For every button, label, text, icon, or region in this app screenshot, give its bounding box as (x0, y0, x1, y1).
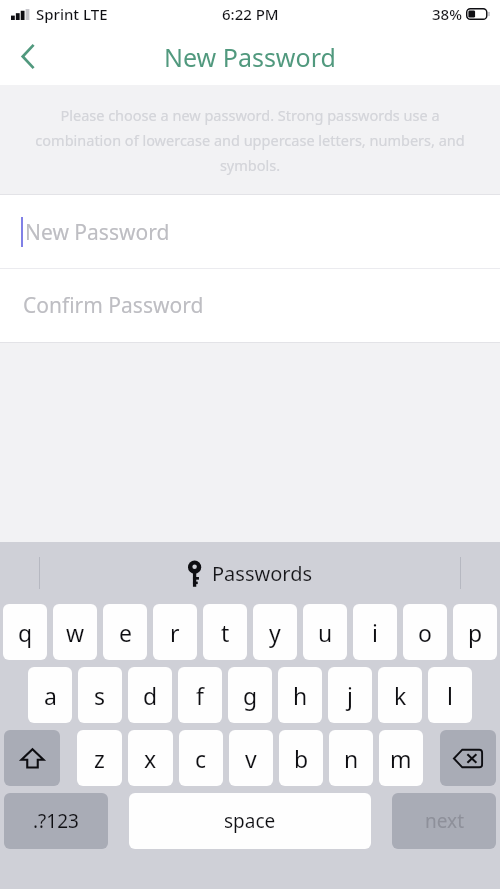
button[interactable]: m (379, 730, 423, 786)
button[interactable]: a (28, 667, 72, 723)
staticText: v (245, 743, 257, 774)
staticText: m (390, 743, 412, 774)
staticText: next (425, 808, 464, 834)
staticText: f (196, 680, 204, 711)
staticText: y (269, 617, 281, 648)
staticText: h (293, 680, 308, 711)
staticText: 38% (432, 4, 462, 24)
staticText: 6:22 PM (222, 4, 279, 24)
button[interactable]: y (253, 604, 297, 660)
staticText: Confirm Password (23, 291, 204, 320)
staticText: Please choose a new password. Strong pas… (34, 105, 466, 175)
button[interactable]: r (153, 604, 197, 660)
button[interactable]: Shift (4, 730, 60, 786)
staticText: j (347, 680, 353, 711)
staticText: a (44, 680, 57, 711)
staticText: l (447, 680, 453, 711)
button[interactable]: Confirm Password (0, 269, 500, 342)
button[interactable]: l (428, 667, 472, 723)
staticText: New Password (25, 218, 170, 247)
button[interactable]: New Password (0, 195, 500, 268)
button[interactable]: u (303, 604, 347, 660)
button[interactable]: c (179, 730, 223, 786)
staticText: o (418, 617, 432, 648)
staticText: q (18, 617, 33, 648)
button[interactable]: w (53, 604, 97, 660)
staticText: z (94, 743, 105, 774)
button[interactable]: g (228, 667, 272, 723)
staticText: space (224, 808, 276, 834)
staticText: Passwords (212, 560, 313, 587)
button[interactable]: s (78, 667, 122, 723)
button[interactable]: i (353, 604, 397, 660)
staticText: k (394, 680, 407, 711)
staticText: i (372, 617, 378, 648)
button[interactable]: z (77, 730, 122, 786)
staticText: s (94, 680, 106, 711)
button[interactable]: next (392, 793, 496, 849)
button[interactable]: .?123 (4, 793, 108, 849)
button[interactable]: o (403, 604, 447, 660)
button[interactable]: Passwords (188, 560, 313, 587)
staticText: p (468, 617, 483, 648)
staticText: u (318, 617, 333, 648)
staticText: b (294, 743, 309, 774)
staticText: d (143, 680, 158, 711)
button[interactable]: t (203, 604, 247, 660)
staticText: r (170, 617, 180, 648)
button[interactable]: Backspace (440, 730, 496, 786)
staticText: e (119, 617, 132, 648)
button[interactable]: k (378, 667, 422, 723)
staticText: n (344, 743, 359, 774)
button[interactable]: j (328, 667, 372, 723)
staticText: t (221, 617, 230, 648)
button[interactable]: space (129, 793, 371, 849)
button[interactable]: b (279, 730, 323, 786)
button[interactable]: d (128, 667, 172, 723)
staticText: New Password (164, 40, 336, 74)
button[interactable]: q (3, 604, 47, 660)
button[interactable]: Back (0, 28, 56, 85)
button[interactable]: n (329, 730, 373, 786)
staticText: Sprint LTE (36, 4, 108, 24)
staticText: g (243, 680, 258, 711)
button[interactable]: x (128, 730, 173, 786)
button[interactable]: h (278, 667, 322, 723)
staticText: c (195, 743, 207, 774)
button[interactable]: f (178, 667, 222, 723)
staticText: w (66, 617, 85, 648)
button[interactable]: e (103, 604, 147, 660)
staticText: x (144, 743, 157, 774)
button[interactable]: p (453, 604, 497, 660)
staticText: .?123 (33, 808, 79, 834)
button[interactable]: v (229, 730, 273, 786)
